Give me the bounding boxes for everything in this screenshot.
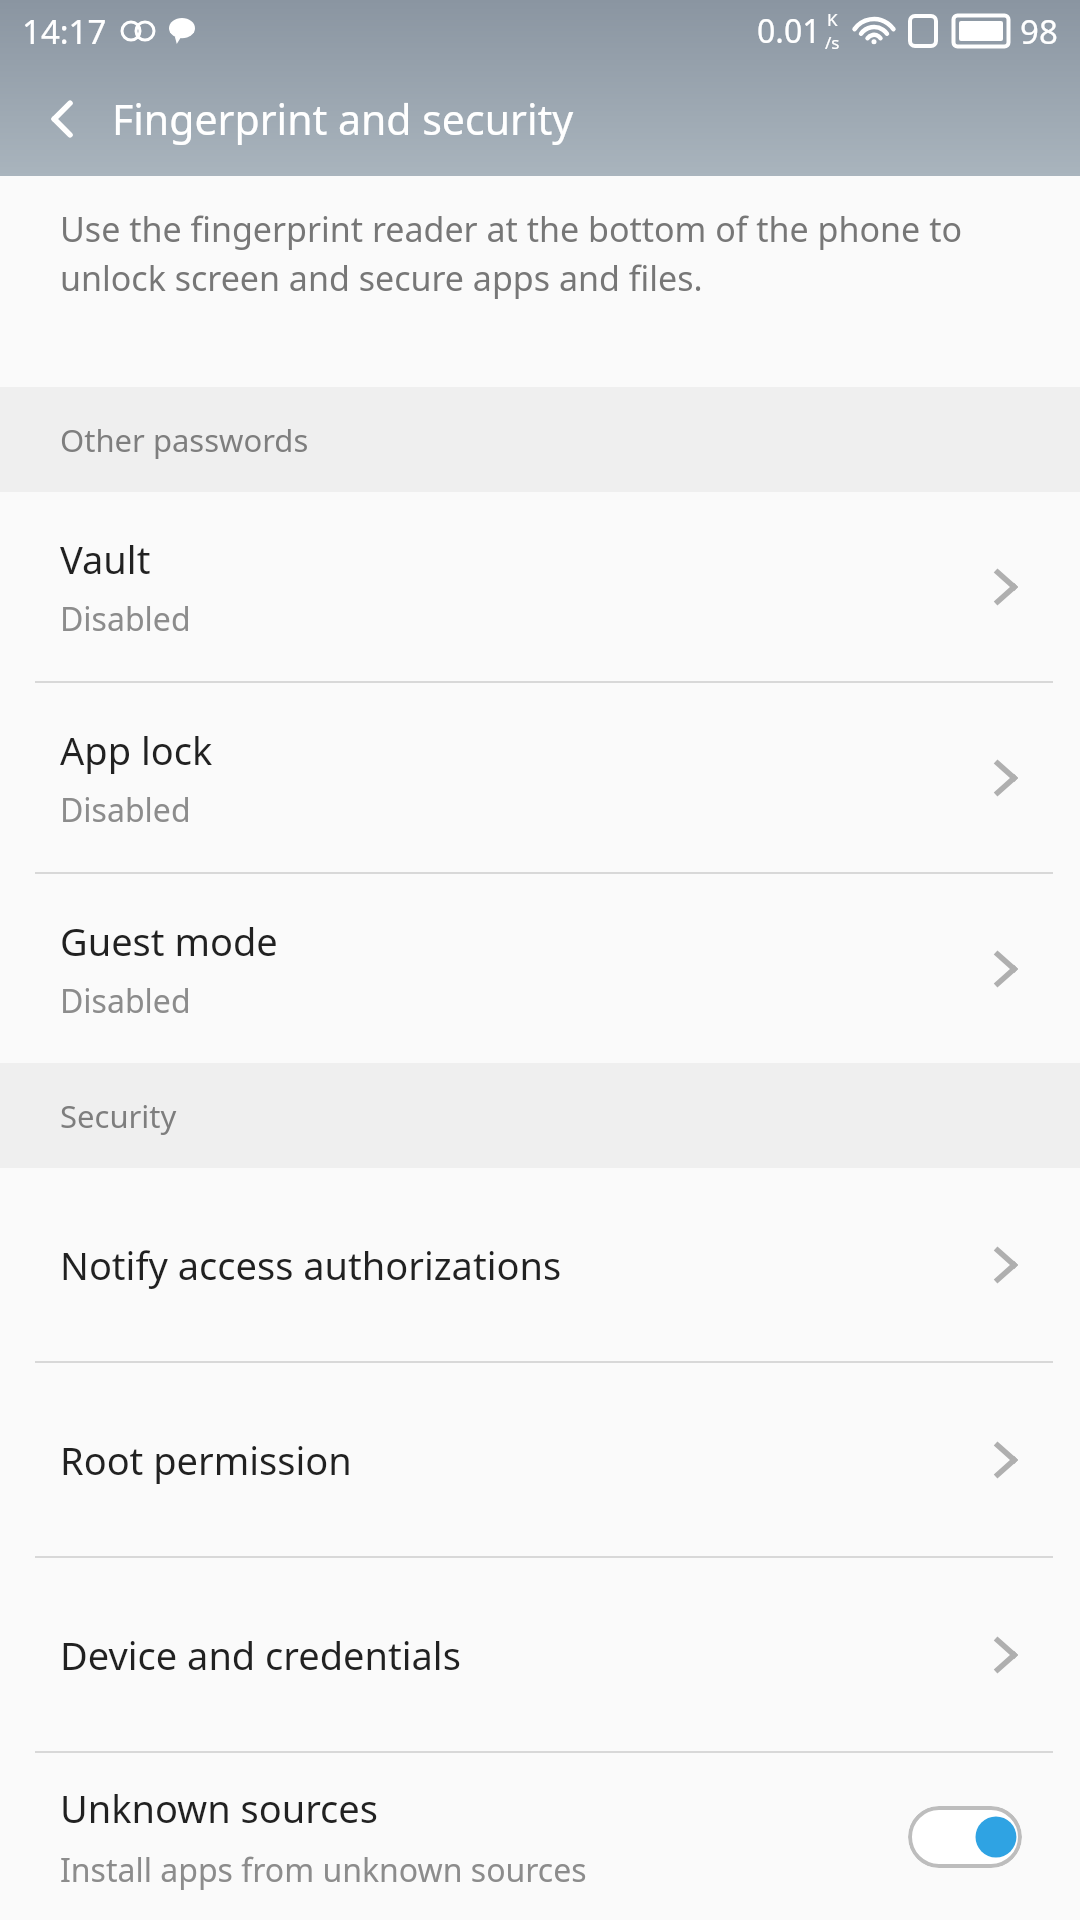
staticText: Security <box>60 1095 177 1137</box>
other: Open <box>982 946 1028 992</box>
other: Open <box>982 1242 1028 1288</box>
staticText: Disabled <box>60 979 191 1023</box>
button[interactable]: Notify access authorizations <box>0 1168 1080 1361</box>
staticText: 0.01 <box>757 9 821 53</box>
other: Open <box>982 564 1028 610</box>
button[interactable]: Device and credentials <box>0 1558 1080 1751</box>
staticText: K <box>827 8 838 31</box>
staticText: Unknown sources <box>60 1782 378 1834</box>
staticText: Disabled <box>60 788 191 832</box>
button[interactable]: Unknown sources toggle <box>908 1806 1022 1868</box>
staticText: Use the fingerprint reader at the bottom… <box>60 206 1028 301</box>
button[interactable]: Unknown sources <box>0 1753 1080 1920</box>
staticText: Root permission <box>60 1434 352 1486</box>
staticText: 98 <box>1020 9 1058 54</box>
button[interactable]: Back <box>26 82 100 156</box>
staticText: Guest mode <box>60 915 278 967</box>
other: Open <box>982 1437 1028 1483</box>
button[interactable]: Root permission <box>0 1363 1080 1556</box>
button[interactable]: Vault <box>0 492 1080 681</box>
staticText: Notify access authorizations <box>60 1239 562 1291</box>
staticText: /s <box>825 31 840 54</box>
staticText: Device and credentials <box>60 1629 461 1681</box>
other: Open <box>982 755 1028 801</box>
staticText: Install apps from unknown sources <box>60 1848 587 1892</box>
other: Open <box>982 1632 1028 1678</box>
staticText: App lock <box>60 724 213 776</box>
staticText: Other passwords <box>60 419 309 461</box>
button[interactable]: App lock <box>0 683 1080 872</box>
staticText: Fingerprint and security <box>112 91 574 147</box>
staticText: 14:17 <box>22 9 107 54</box>
staticText: Disabled <box>60 597 191 641</box>
staticText: Vault <box>60 533 151 585</box>
button[interactable]: Guest mode <box>0 874 1080 1063</box>
